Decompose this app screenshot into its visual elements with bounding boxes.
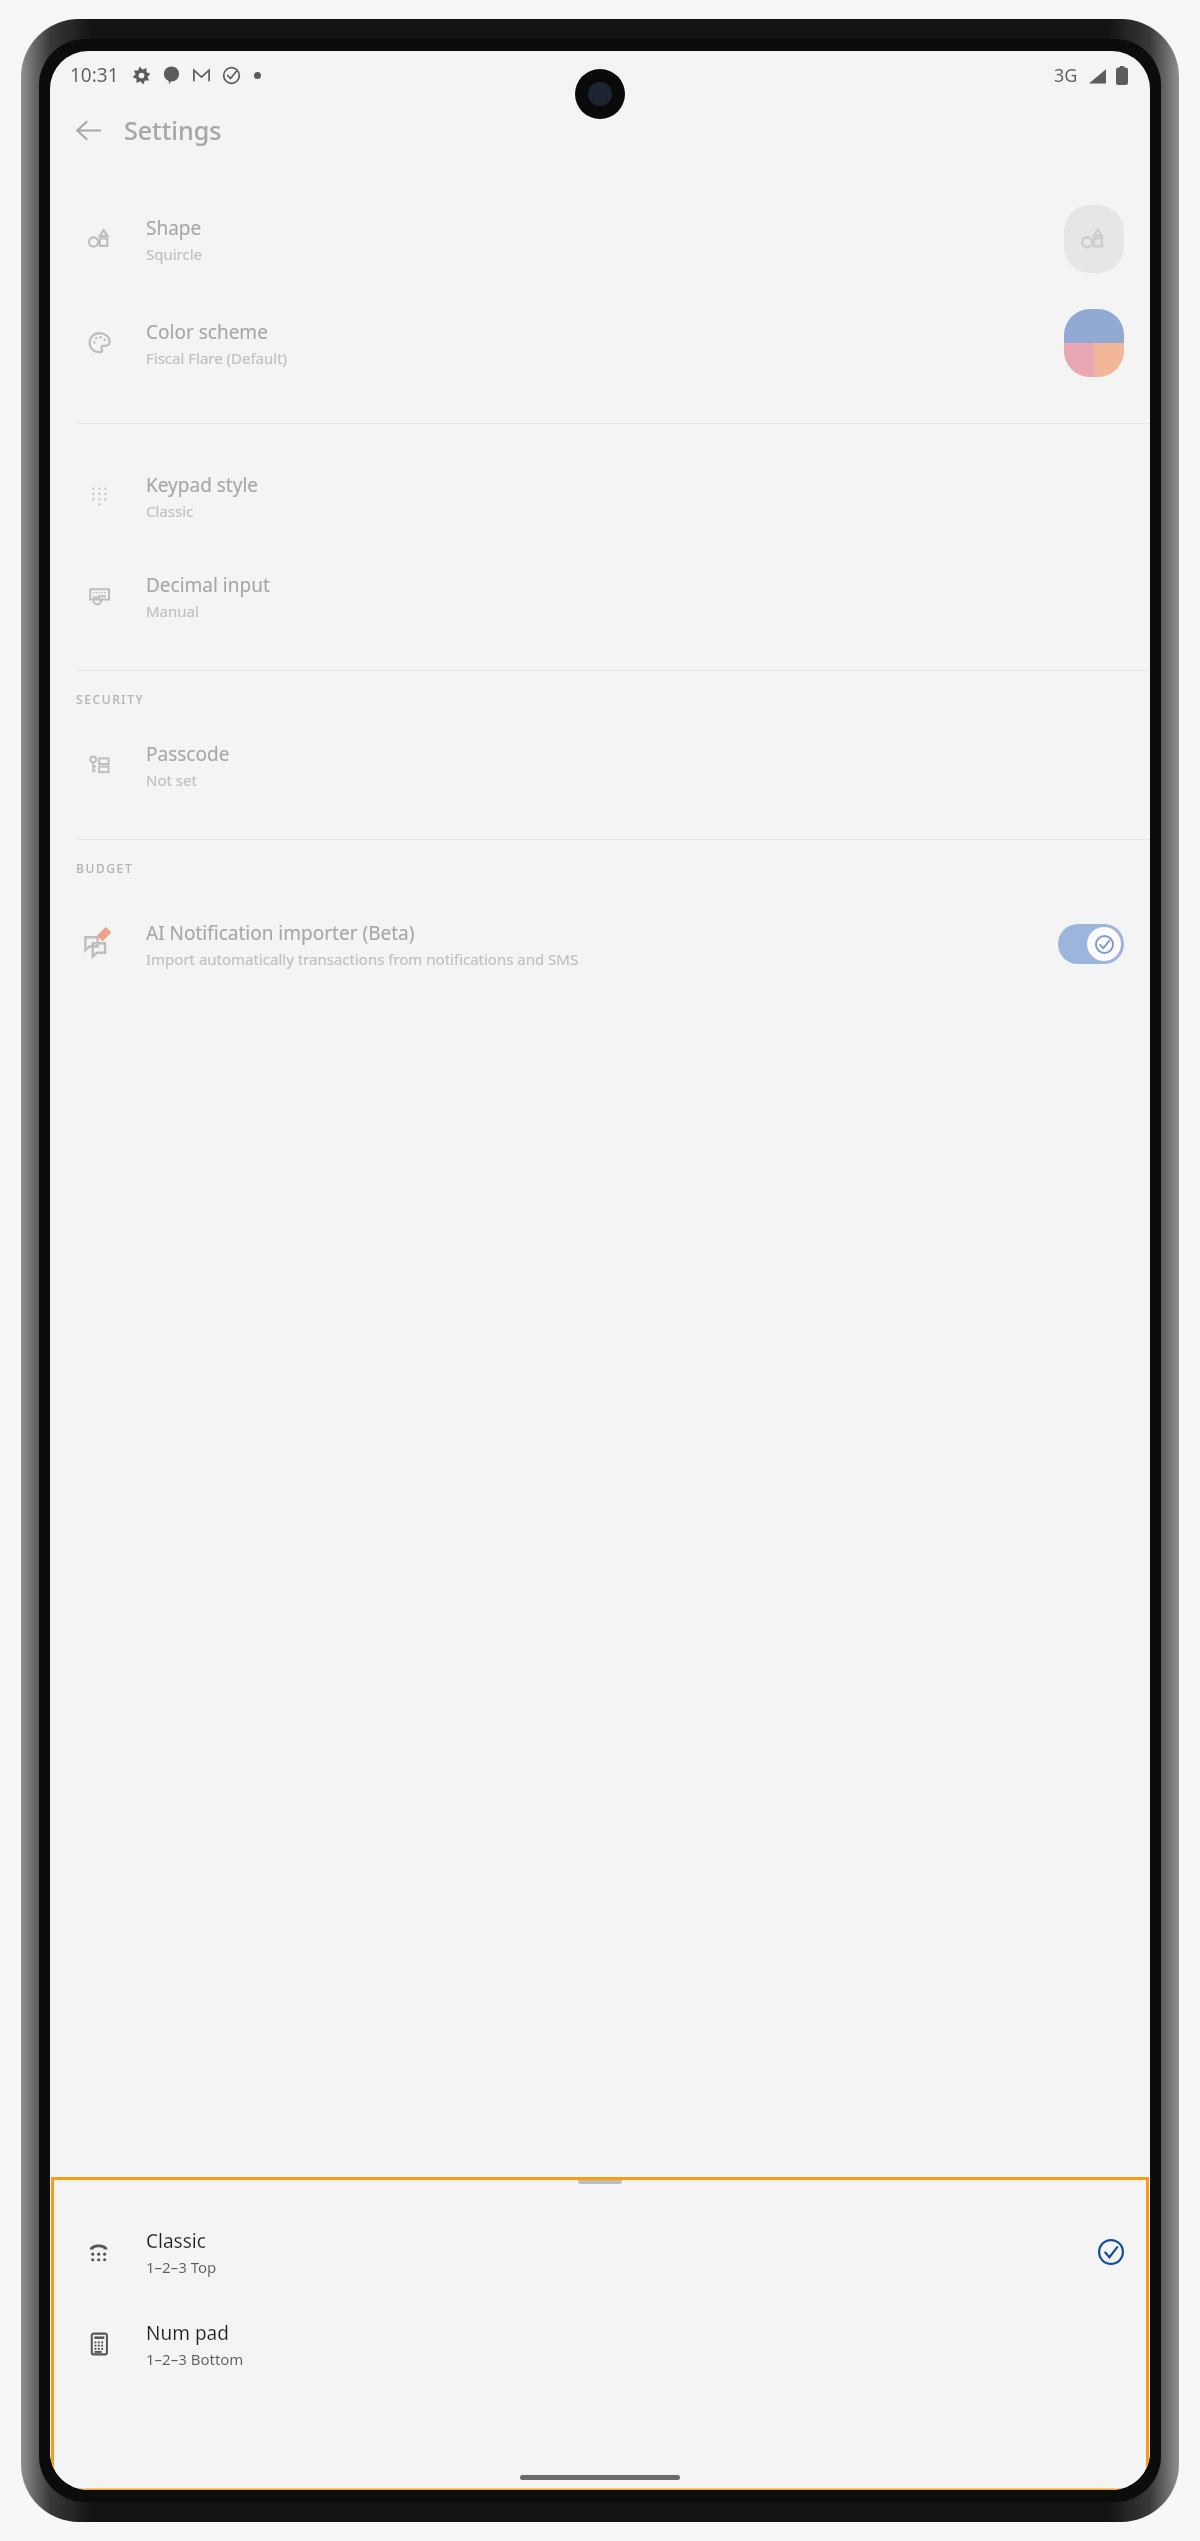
staticText: AI Notification importer (Beta)	[146, 920, 415, 946]
staticText: Settings	[124, 113, 222, 147]
staticText: Color scheme	[146, 319, 268, 345]
staticText: Num pad	[146, 2320, 229, 2346]
button[interactable]: AI Notification importer toggle	[1058, 924, 1124, 964]
button[interactable]: Shape preview	[1064, 205, 1124, 273]
staticText: 3G	[1054, 63, 1078, 88]
button[interactable]: Classic	[50, 2206, 1150, 2298]
staticText: Squircle	[146, 244, 203, 264]
button[interactable]: Num pad	[50, 2298, 1150, 2390]
staticText: BUDGET	[76, 860, 134, 876]
staticText: Passcode	[146, 741, 230, 767]
staticText: Fiscal Flare (Default)	[146, 348, 288, 368]
button[interactable]: AI Notification importer (Beta)	[50, 884, 1150, 1004]
button[interactable]: Decimal input	[50, 546, 1150, 646]
button[interactable]: Color scheme preview	[1064, 309, 1124, 377]
staticText: SECURITY	[76, 691, 145, 707]
staticText: Not set	[146, 770, 197, 790]
staticText: Keypad style	[146, 472, 259, 498]
staticText: Classic	[146, 501, 194, 521]
staticText: Decimal input	[146, 572, 270, 598]
staticText: Shape	[146, 215, 202, 241]
button[interactable]: Keypad style	[50, 446, 1150, 546]
staticText: Classic	[146, 2228, 206, 2254]
button[interactable]: Back	[64, 106, 112, 154]
staticText: 1–2–3 Bottom	[146, 2349, 244, 2369]
button[interactable]: Color scheme	[50, 291, 1150, 395]
staticText: Manual	[146, 601, 199, 621]
staticText: Import automatically transactions from n…	[146, 949, 579, 969]
staticText: 10:31	[70, 62, 119, 88]
staticText: 1–2–3 Top	[146, 2257, 217, 2277]
button[interactable]: Shape	[50, 187, 1150, 291]
button[interactable]: Passcode	[50, 715, 1150, 815]
